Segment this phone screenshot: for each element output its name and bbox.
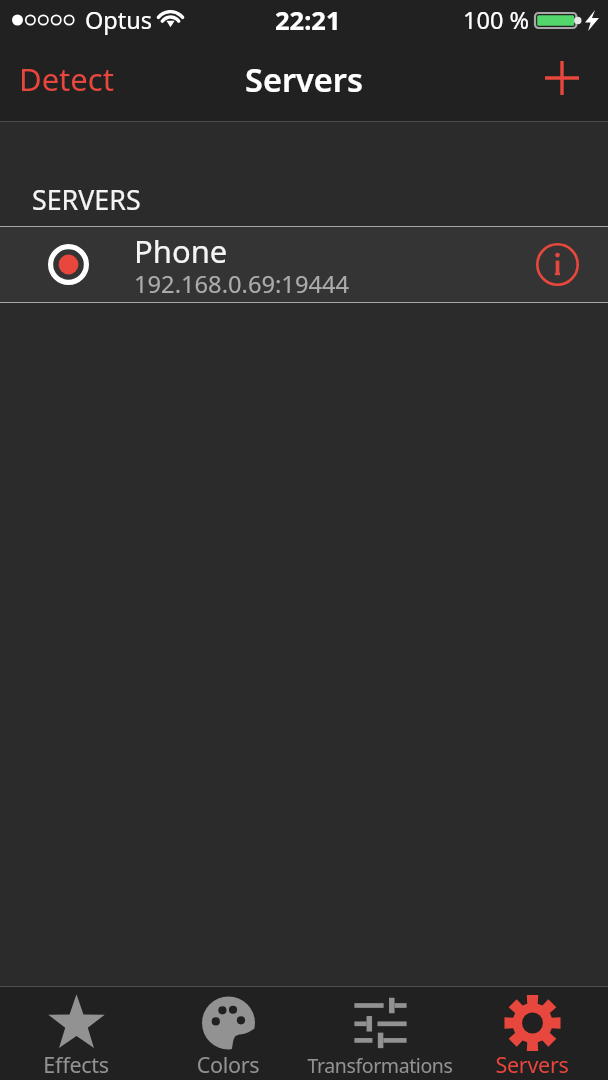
button[interactable]: Colors [152,987,304,1080]
staticText: Servers [432,1050,608,1079]
button[interactable]: Detect [0,46,133,116]
staticText: Phone [134,230,228,272]
staticText: Detect [19,58,114,100]
staticText: SERVERS [32,181,141,218]
staticText: Optus [85,4,153,36]
staticText: Transformations [280,1052,480,1079]
staticText: Servers [245,57,363,101]
button[interactable]: Effects [0,987,152,1080]
button[interactable]: Add server [527,50,608,112]
staticText: 192.168.0.69:19444 [134,268,350,300]
staticText: 100 % [463,4,529,36]
staticText: Colors [128,1050,328,1079]
button[interactable]: Info [518,229,608,300]
staticText: 22:21 [275,3,341,38]
button[interactable]: Transformations [304,987,456,1080]
button[interactable]: Servers [456,987,608,1080]
button[interactable]: Phone [0,227,608,302]
staticText: Effects [0,1050,176,1079]
